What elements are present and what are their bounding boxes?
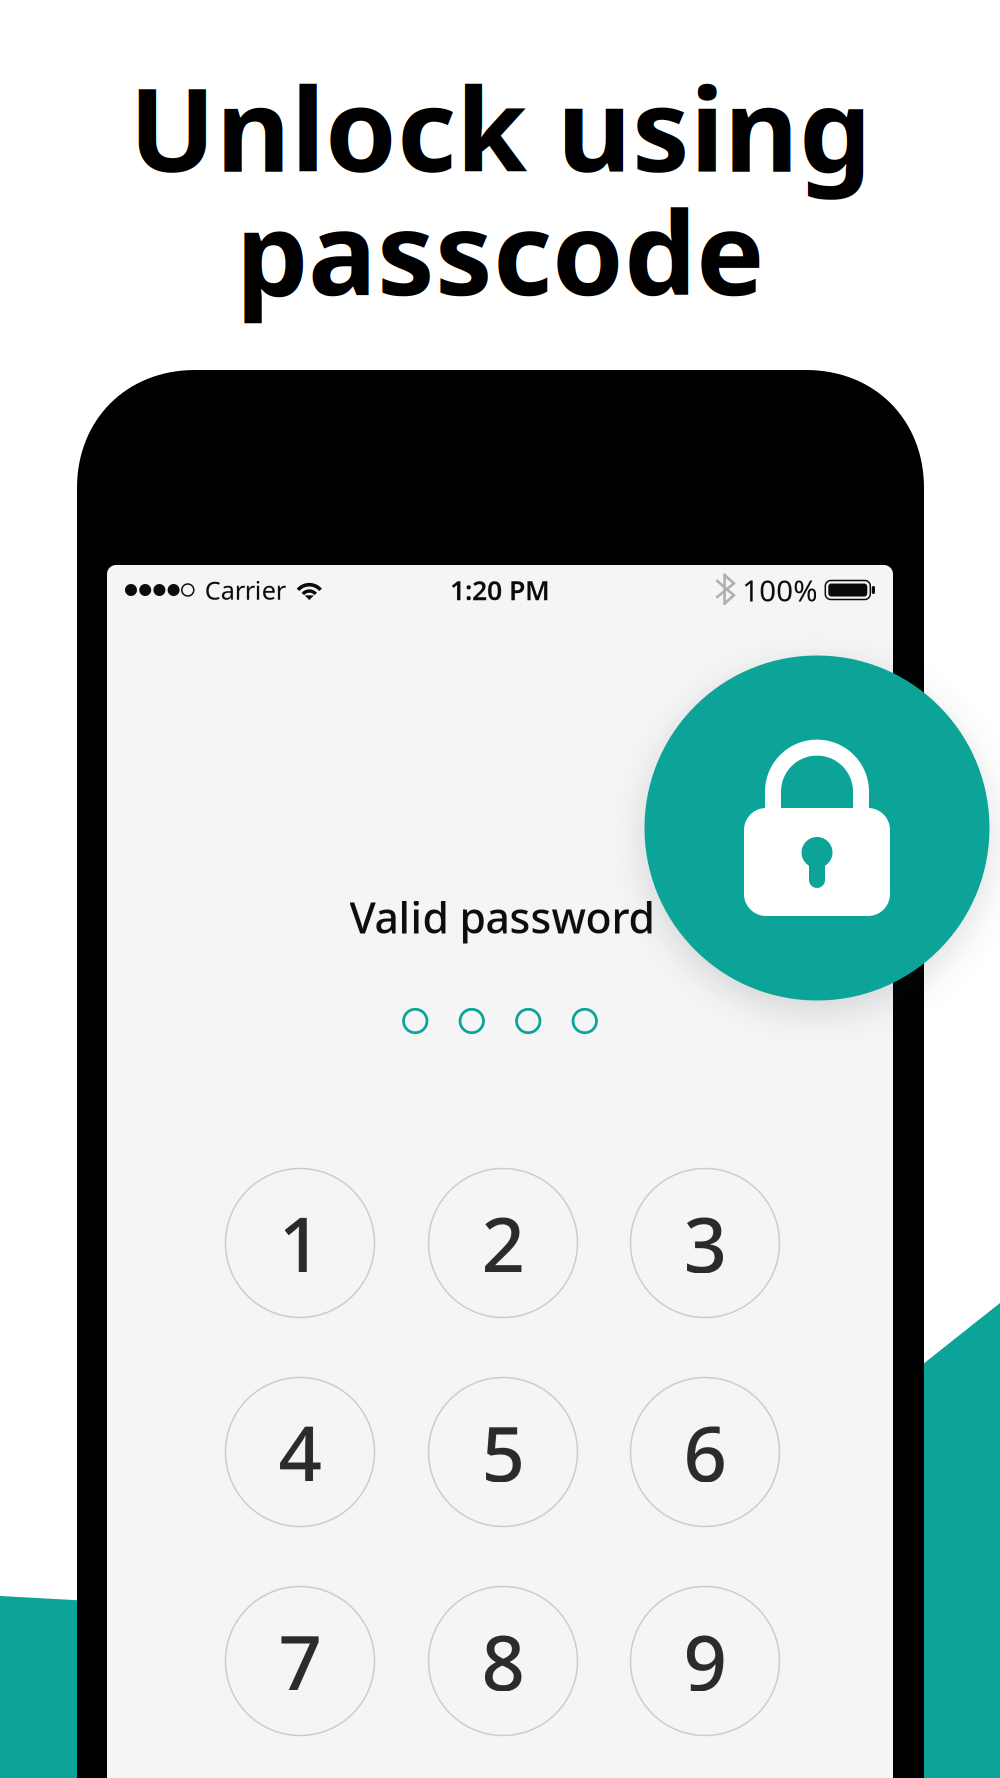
button[interactable]: 9 (630, 1586, 779, 1735)
staticText: 3 (683, 1192, 726, 1293)
button[interactable]: 6 (630, 1377, 779, 1526)
staticText: 7 (278, 1610, 321, 1711)
button[interactable]: 3 (630, 1168, 779, 1317)
staticText: 8 (481, 1610, 524, 1711)
staticText: 9 (683, 1610, 726, 1711)
staticText: 2 (481, 1192, 524, 1293)
button[interactable]: 7 (225, 1586, 374, 1735)
staticText: Carrier (205, 573, 286, 607)
staticText: 6 (683, 1401, 726, 1502)
staticText: passcode (236, 174, 764, 327)
button[interactable]: 5 (428, 1377, 577, 1526)
staticText: 5 (481, 1401, 524, 1502)
button[interactable]: 2 (428, 1168, 577, 1317)
button[interactable]: 1 (225, 1168, 374, 1317)
staticText: 1 (278, 1192, 321, 1293)
staticText: Unlock using (129, 51, 871, 203)
staticText: 100% (742, 570, 817, 609)
button[interactable]: 4 (225, 1377, 374, 1526)
staticText: 4 (278, 1401, 321, 1502)
staticText: 1:20 PM (450, 572, 550, 608)
button[interactable]: 8 (428, 1586, 577, 1735)
staticText: Valid password (349, 889, 654, 945)
